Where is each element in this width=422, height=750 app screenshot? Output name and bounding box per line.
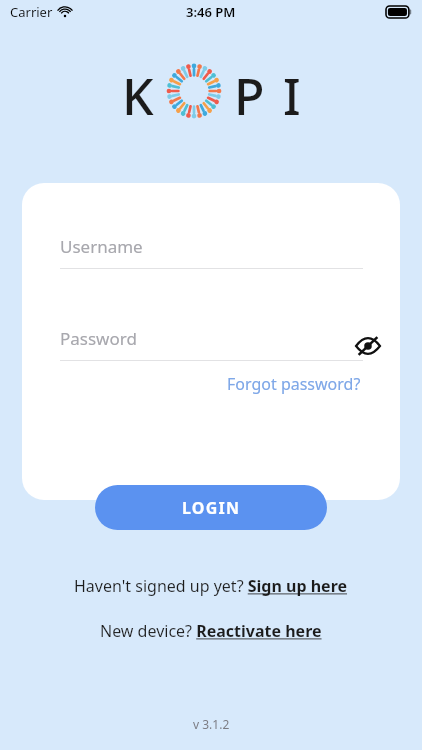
button[interactable]: Show password bbox=[353, 331, 383, 361]
staticText: Password bbox=[60, 327, 137, 350]
staticText: P bbox=[234, 62, 265, 120]
button[interactable]: Forgot password? bbox=[225, 371, 363, 397]
staticText: I bbox=[283, 62, 301, 120]
button[interactable]: New device? Reactivate here bbox=[94, 617, 328, 645]
staticText: v 3.1.2 bbox=[193, 716, 230, 732]
staticText: Haven't signed up yet? Sign up here bbox=[74, 575, 348, 597]
button[interactable]: Haven't signed up yet? Sign up here bbox=[68, 572, 354, 600]
button[interactable]: Password bbox=[60, 327, 363, 350]
staticText: K bbox=[122, 62, 154, 120]
staticText: Forgot password? bbox=[227, 373, 361, 395]
staticText: 3:46 PM bbox=[186, 3, 236, 21]
button[interactable]: Username bbox=[60, 235, 363, 269]
staticText: Username bbox=[60, 235, 143, 258]
staticText: Carrier bbox=[10, 3, 53, 21]
button[interactable]: LOGIN bbox=[95, 485, 327, 530]
staticText: New device? Reactivate here bbox=[100, 620, 322, 642]
staticText: LOGIN bbox=[182, 497, 241, 519]
